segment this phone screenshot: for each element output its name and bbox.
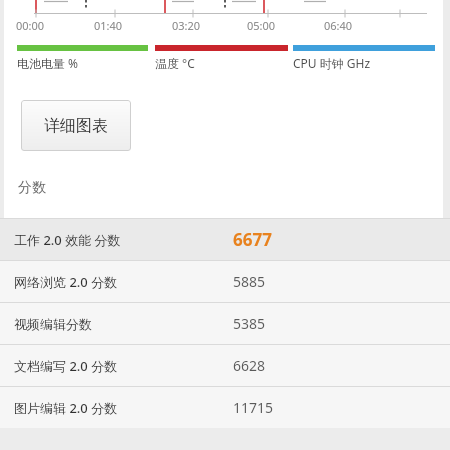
staticText: 电池电量 % — [17, 55, 79, 71]
staticText: 网络浏览 2.0 分数 — [14, 273, 118, 291]
staticText: 6677 — [233, 228, 272, 251]
button[interactable]: 详细图表 — [21, 100, 131, 151]
button[interactable]: 视频编辑分数 — [0, 303, 450, 344]
staticText: CPU 时钟 GHz — [293, 55, 371, 71]
staticText: 5385 — [233, 314, 266, 333]
staticText: 详细图表 — [44, 116, 108, 136]
staticText: 6628 — [233, 356, 266, 375]
button[interactable]: 网络浏览 2.0 分数 — [0, 261, 450, 302]
staticText: 文档编写 2.0 分数 — [14, 357, 118, 375]
staticText: 11715 — [233, 398, 274, 417]
button[interactable]: 图片编辑 2.0 分数 — [0, 387, 450, 428]
staticText: 分数 — [18, 179, 46, 197]
staticText: 工作 2.0 效能 分数 — [14, 231, 121, 249]
button[interactable]: 工作 2.0 效能 分数 — [0, 219, 450, 260]
staticText: 05:00 — [247, 18, 276, 33]
staticText: 图片编辑 2.0 分数 — [14, 399, 118, 417]
staticText: 06:40 — [324, 18, 353, 33]
staticText: 视频编辑分数 — [14, 316, 92, 332]
staticText: 5885 — [233, 272, 266, 291]
button[interactable]: 文档编写 2.0 分数 — [0, 345, 450, 386]
staticText: 00:00 — [16, 18, 45, 33]
staticText: 温度 °C — [155, 55, 195, 71]
staticText: 03:20 — [172, 18, 201, 33]
staticText: 01:40 — [94, 18, 123, 33]
